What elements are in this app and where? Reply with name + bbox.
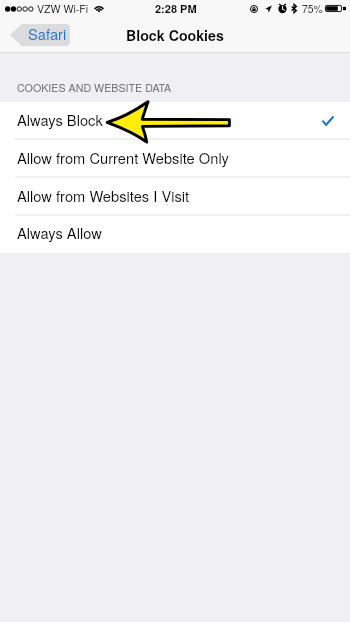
staticText: 75% — [302, 1, 323, 16]
staticText: Allow from Websites I Visit — [17, 185, 190, 206]
other: Selected — [322, 116, 334, 126]
button[interactable]: Safari — [10, 24, 70, 46]
staticText: 2:28 PM — [155, 1, 197, 17]
staticText: Allow from Current Website Only — [17, 147, 229, 168]
staticText: VZW Wi-Fi — [37, 1, 89, 16]
staticText: Always Block — [17, 109, 103, 130]
button[interactable]: Allow from Current Website Only — [0, 140, 350, 178]
button[interactable]: Always Block — [0, 102, 350, 140]
staticText: Block Cookies — [126, 25, 224, 45]
staticText: COOKIES AND WEBSITE DATA — [17, 80, 172, 95]
button[interactable]: Allow from Websites I Visit — [0, 178, 350, 216]
staticText: Always Allow — [17, 222, 102, 243]
button[interactable]: Always Allow — [0, 215, 350, 253]
staticText: Safari — [28, 23, 67, 44]
